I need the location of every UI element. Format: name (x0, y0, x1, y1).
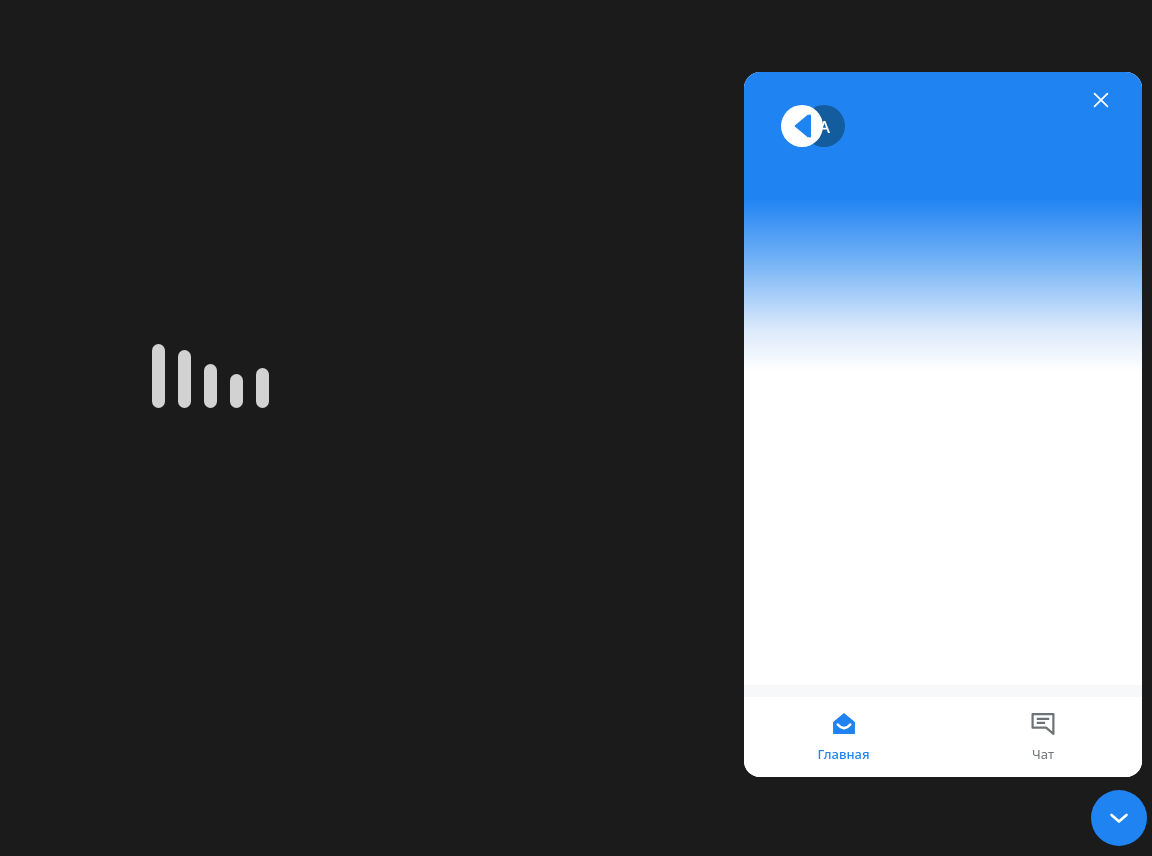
staticText: A (819, 115, 830, 138)
button[interactable]: Главная (744, 697, 943, 777)
staticText: Главная (817, 745, 870, 763)
button[interactable]: Logo (781, 105, 823, 147)
button[interactable]: Чат (943, 697, 1142, 777)
button[interactable]: Collapse (1091, 790, 1147, 846)
button[interactable]: A (803, 105, 845, 147)
button[interactable]: Close (1079, 78, 1123, 122)
staticText: Чат (1032, 745, 1054, 763)
